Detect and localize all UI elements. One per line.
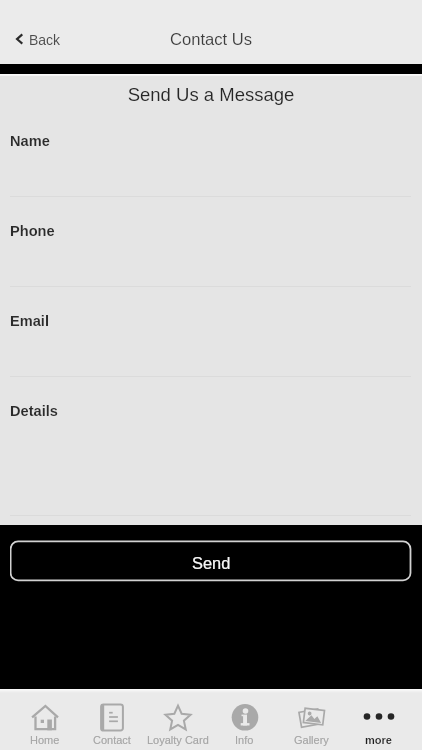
staticText: Gallery bbox=[294, 734, 329, 746]
staticText: Back bbox=[29, 32, 61, 48]
button[interactable]: Send bbox=[10, 540, 412, 582]
staticText: Phone bbox=[10, 223, 55, 239]
button[interactable]: Loyalty Card bbox=[144, 689, 211, 750]
staticText: Send Us a Message bbox=[0, 84, 422, 105]
staticText: Contact Us bbox=[170, 30, 253, 49]
button[interactable]: Info bbox=[211, 689, 278, 750]
staticText: Contact bbox=[93, 734, 131, 746]
staticText: Home bbox=[30, 734, 60, 746]
staticText: Info bbox=[235, 734, 254, 746]
button[interactable]: Name bbox=[0, 106, 422, 196]
staticText: Name bbox=[10, 133, 50, 149]
staticText: Email bbox=[10, 313, 49, 329]
button[interactable]: Gallery bbox=[278, 689, 345, 750]
button[interactable]: Back bbox=[6, 22, 68, 52]
staticText: Send bbox=[192, 554, 231, 572]
button[interactable]: Home bbox=[11, 689, 78, 750]
button[interactable]: Contact bbox=[78, 689, 145, 750]
staticText: more bbox=[365, 734, 392, 746]
staticText: Details bbox=[10, 403, 58, 419]
button[interactable]: Email bbox=[0, 286, 422, 376]
button[interactable]: Phone bbox=[0, 196, 422, 286]
staticText: Loyalty Card bbox=[147, 734, 209, 746]
button[interactable]: more bbox=[345, 689, 412, 750]
button[interactable]: Details bbox=[0, 376, 422, 515]
